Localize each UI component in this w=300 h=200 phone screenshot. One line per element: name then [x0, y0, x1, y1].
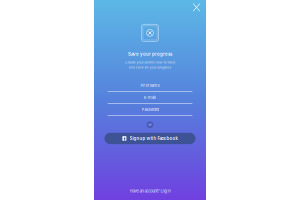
staticText: Create your profile now to track [124, 60, 175, 64]
staticText: Save your progress [128, 51, 172, 57]
staticText: Password [141, 107, 158, 112]
staticText: Have an account? Login [129, 188, 170, 193]
staticText: E-mail [144, 95, 156, 100]
button[interactable]: First name [107, 83, 192, 95]
button[interactable]: Password [107, 107, 192, 119]
button[interactable]: Have an account? Login [129, 188, 170, 194]
button[interactable]: Close [190, 1, 202, 14]
button[interactable]: E-mail [107, 95, 192, 107]
staticText: First name [140, 83, 159, 88]
staticText: and save all your progress [128, 65, 171, 69]
staticText: or [148, 123, 151, 127]
staticText: Signup with Facebook [130, 136, 178, 141]
button[interactable]: Signup with Facebook [104, 133, 195, 144]
